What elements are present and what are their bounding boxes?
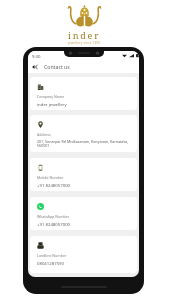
staticText: WhatsApp Number bbox=[37, 214, 70, 219]
staticText: inder jewellery bbox=[37, 101, 67, 107]
other: Back bbox=[32, 64, 38, 70]
button[interactable]: Address bbox=[30, 115, 137, 152]
button[interactable]: Company Name bbox=[30, 77, 137, 110]
staticText: jewellery since 1950 bbox=[68, 41, 101, 45]
button[interactable]: Back bbox=[28, 60, 139, 73]
button[interactable]: WhatsApp Number bbox=[30, 197, 137, 230]
staticText: Address bbox=[37, 132, 51, 137]
staticText: 08041287590 bbox=[37, 260, 65, 266]
staticText: inder bbox=[68, 29, 101, 41]
staticText: Mobile Number bbox=[37, 175, 64, 180]
staticText: 9:30 bbox=[32, 53, 41, 59]
staticText: +91 8248057000 bbox=[37, 221, 71, 227]
staticText: Company Name bbox=[37, 94, 65, 99]
button[interactable]: Mobile Number bbox=[30, 158, 137, 191]
staticText: Contact us bbox=[44, 63, 70, 70]
staticText: Landline Number bbox=[37, 253, 67, 258]
button[interactable]: Landline Number bbox=[30, 236, 137, 273]
staticText: 201, Sonarpar Rd Mislkasanam, Konyaram, … bbox=[37, 139, 129, 148]
staticText: +91 8248057000 bbox=[37, 182, 71, 188]
